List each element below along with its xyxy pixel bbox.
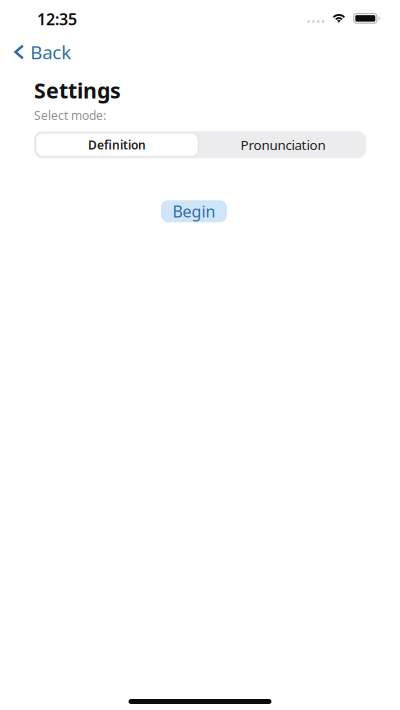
button[interactable]: Begin bbox=[161, 200, 227, 222]
staticText: Pronunciation bbox=[240, 136, 325, 154]
button[interactable]: Pronunciation bbox=[200, 131, 366, 158]
staticText: Select mode: bbox=[34, 107, 106, 123]
staticText: Back bbox=[30, 40, 71, 64]
staticText: Settings bbox=[34, 76, 121, 104]
button[interactable]: Back bbox=[0, 40, 81, 64]
staticText: Begin bbox=[172, 201, 215, 222]
staticText: Definition bbox=[88, 137, 146, 153]
staticText: 12:35 bbox=[37, 8, 77, 30]
button[interactable]: Definition bbox=[34, 131, 200, 158]
